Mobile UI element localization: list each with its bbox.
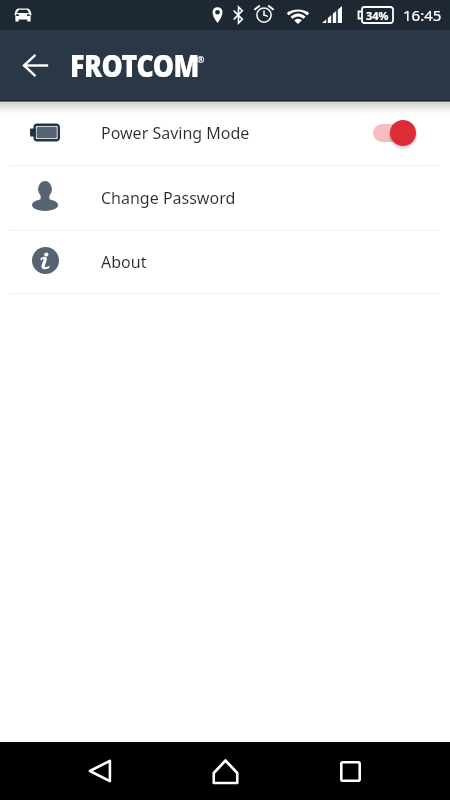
button[interactable]: Home	[189, 742, 261, 800]
staticText: ®	[197, 53, 205, 65]
button[interactable]: Back	[64, 742, 136, 800]
button[interactable]: Power Saving Mode	[0, 100, 450, 165]
staticText: FROTCOM	[70, 45, 199, 86]
staticText: Power Saving Mode	[101, 122, 250, 144]
staticText: 34%	[366, 8, 389, 23]
button[interactable]: Recent apps	[314, 742, 386, 800]
button[interactable]: Navigate up	[0, 30, 70, 100]
staticText: 16:45	[403, 5, 442, 25]
staticText: Change Password	[101, 187, 236, 209]
button[interactable]: Change Password	[0, 166, 450, 230]
button[interactable]: About	[0, 231, 450, 293]
staticText: About	[101, 251, 147, 273]
button[interactable]: Power saving mode, on	[339, 100, 450, 165]
